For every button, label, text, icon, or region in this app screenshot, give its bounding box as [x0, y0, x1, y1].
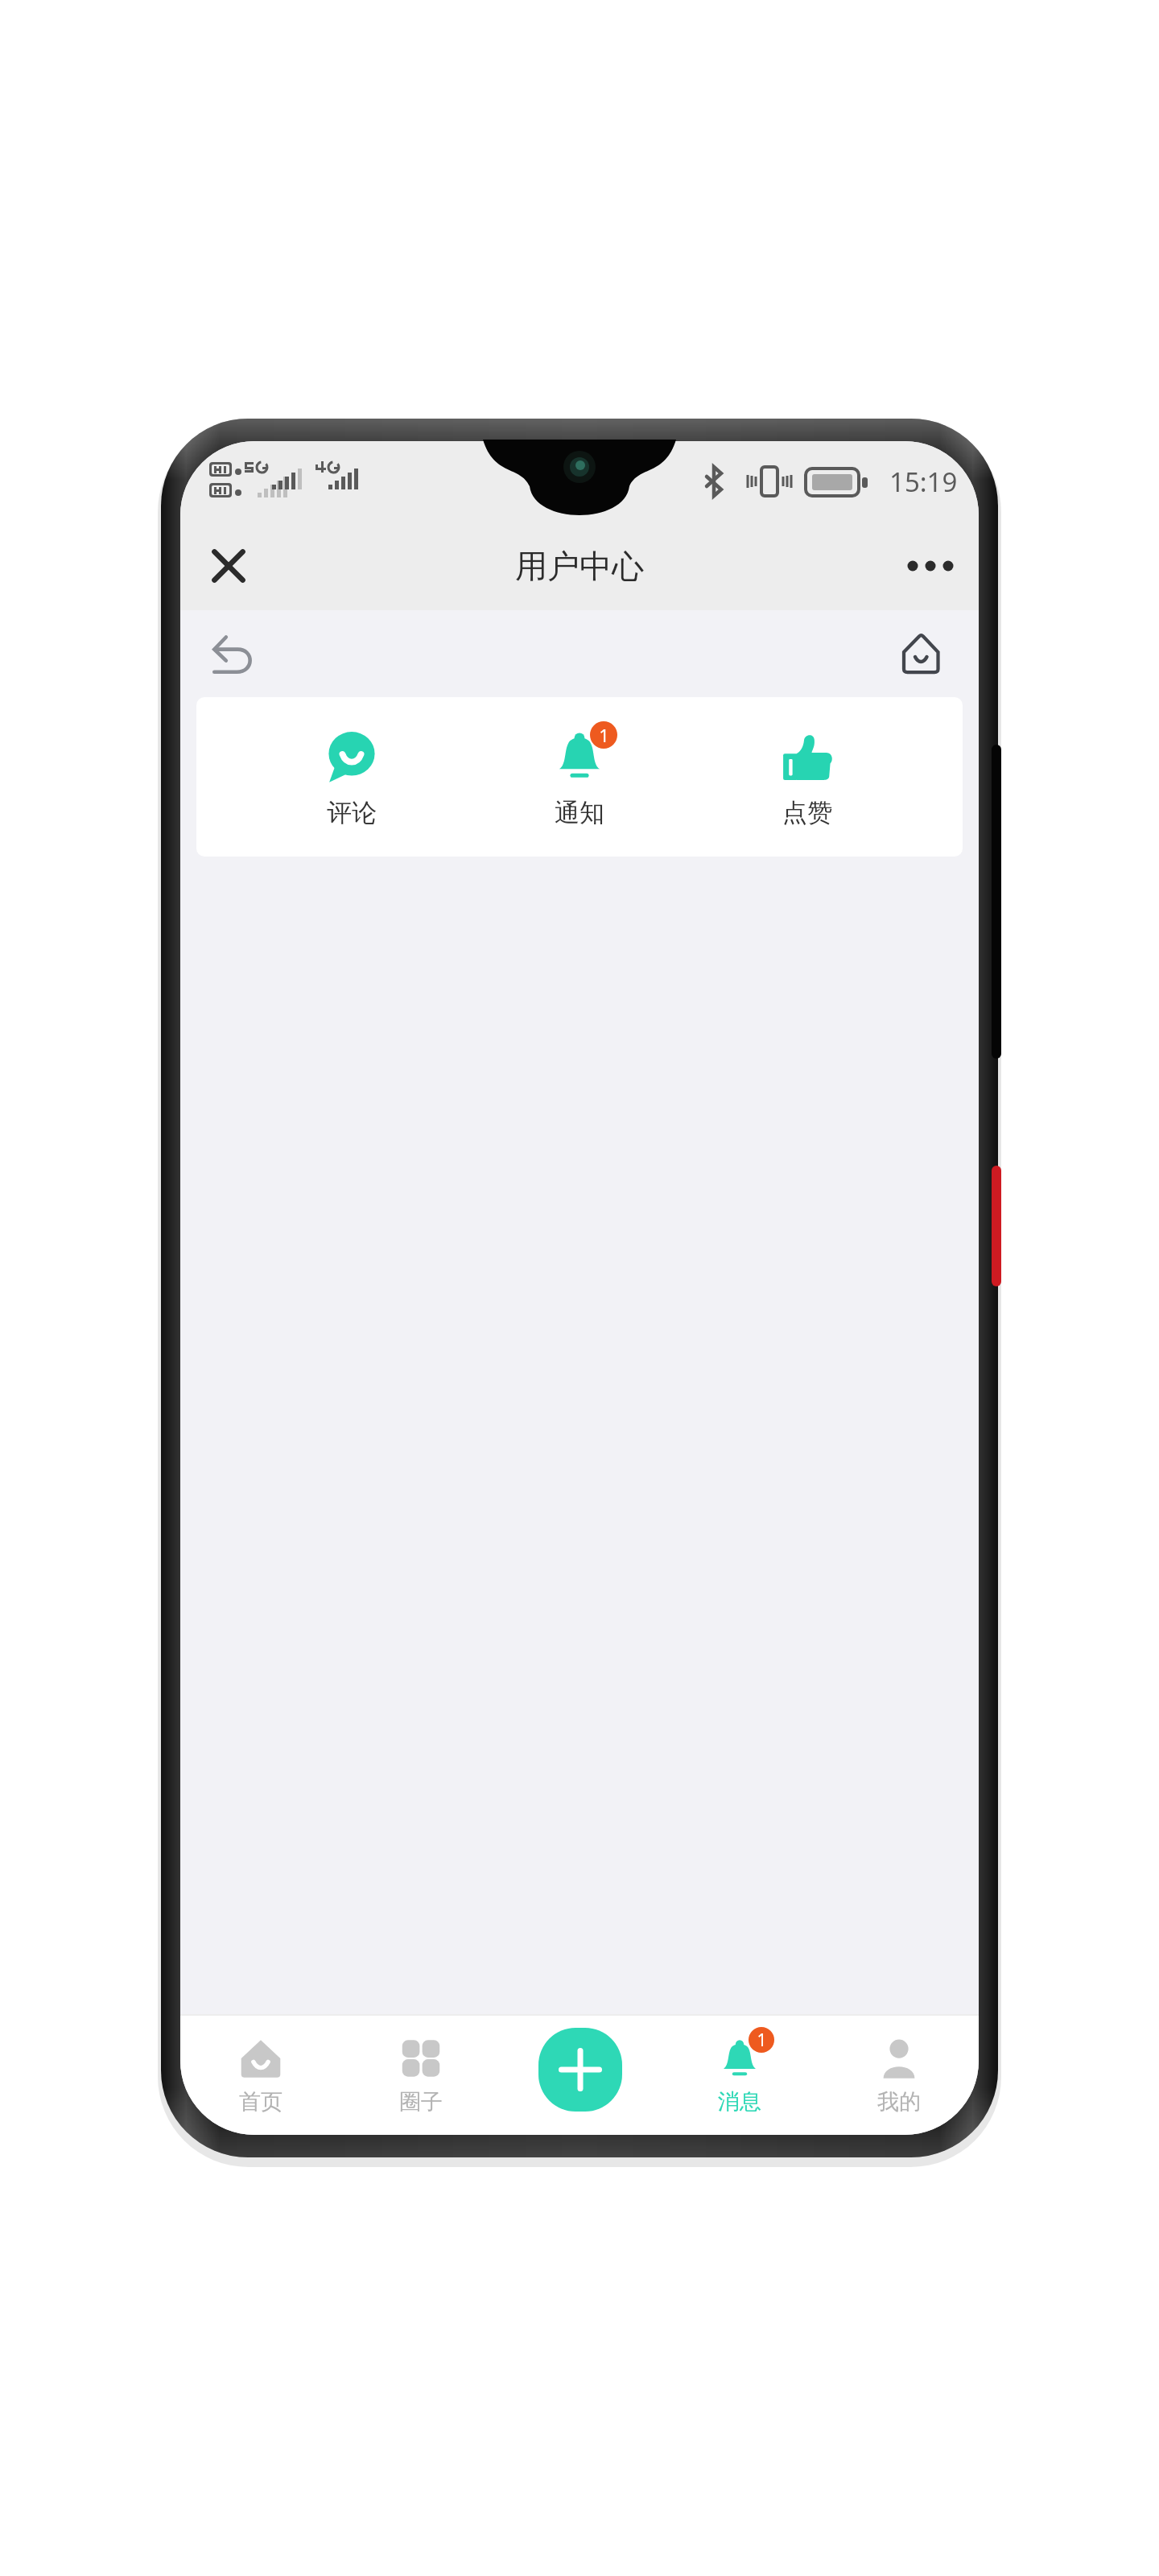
button[interactable]: 主页 [885, 618, 956, 689]
button[interactable]: 1 [507, 720, 652, 835]
staticText: 消息 [718, 2088, 761, 2116]
staticText: 15:19 [889, 464, 958, 500]
button[interactable]: 点赞 [735, 720, 880, 835]
button[interactable]: 更多 [897, 532, 964, 600]
staticText: 通知 [555, 797, 604, 828]
staticText: 评论 [327, 797, 377, 828]
button[interactable]: 关闭 [195, 532, 262, 600]
staticText: 圈子 [399, 2088, 443, 2116]
button[interactable]: 1 [660, 2014, 819, 2135]
staticText: 1 [757, 2029, 767, 2052]
button[interactable]: 圈子 [340, 2014, 501, 2135]
staticText: 用户中心 [515, 546, 644, 586]
button[interactable]: 评论 [279, 720, 424, 835]
staticText: 我的 [877, 2088, 921, 2116]
button[interactable]: 首页 [180, 2014, 340, 2135]
button[interactable]: 发布 [501, 2014, 660, 2135]
staticText: 1 [599, 723, 609, 747]
button[interactable]: 返回 [198, 618, 269, 689]
button[interactable]: 我的 [819, 2014, 979, 2135]
staticText: 首页 [239, 2088, 283, 2116]
staticText: 点赞 [782, 797, 832, 828]
